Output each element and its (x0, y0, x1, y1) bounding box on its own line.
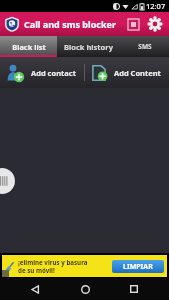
button[interactable]: SMS (120, 36, 169, 57)
button[interactable]: ¡elimine virus y basura (2, 255, 167, 277)
button[interactable]: Add contact (0, 57, 84, 88)
staticText: Black list (12, 42, 46, 52)
staticText: SMS (138, 42, 152, 51)
button[interactable]: Block list widget (123, 14, 143, 34)
button[interactable]: Settings (145, 14, 165, 34)
button[interactable]: Recent apps (120, 278, 148, 300)
staticText: Block history (64, 42, 113, 52)
staticText: ¡elimine virus y basura (18, 258, 88, 266)
staticText: Add Content (114, 68, 161, 78)
staticText: LIMPIAR (123, 262, 153, 272)
staticText: 12:07 (146, 1, 166, 11)
button[interactable]: LIMPIAR (112, 260, 164, 273)
button[interactable]: Home (71, 278, 99, 300)
button[interactable]: Back (21, 278, 49, 300)
button[interactable]: Open drawer (0, 168, 13, 194)
button[interactable]: Black list (0, 36, 57, 57)
staticText: Call and sms blocker (24, 18, 116, 30)
button[interactable]: Block history (57, 36, 120, 57)
staticText: de su móvil! (18, 266, 55, 274)
button[interactable]: Add Content (85, 57, 169, 88)
staticText: Add contact (31, 68, 76, 78)
